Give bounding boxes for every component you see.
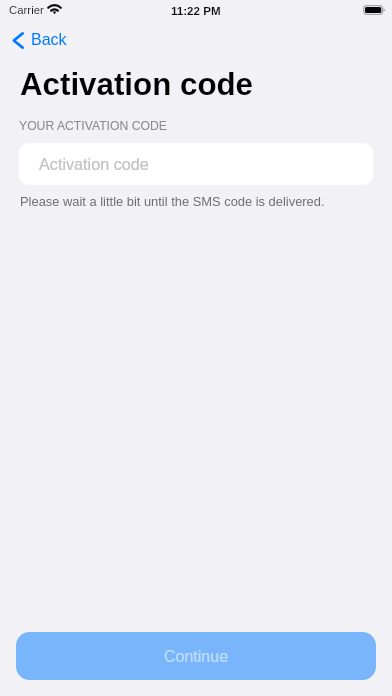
staticText: Please wait a little bit until the SMS c… [20,194,325,208]
staticText: Activation code [20,67,254,102]
staticText: Continue [164,648,229,666]
staticText: Activation code [39,155,149,173]
staticText: Carrier [9,4,44,17]
staticText: YOUR ACTIVATION CODE [19,119,167,133]
button[interactable]: Continue [16,632,376,680]
staticText: Back [31,31,67,49]
button[interactable]: Back [9,26,70,54]
button[interactable]: Activation code [19,143,373,185]
other: Wi-Fi [47,4,62,15]
other: Battery full [363,5,386,15]
staticText: 11:22 PM [171,4,221,17]
